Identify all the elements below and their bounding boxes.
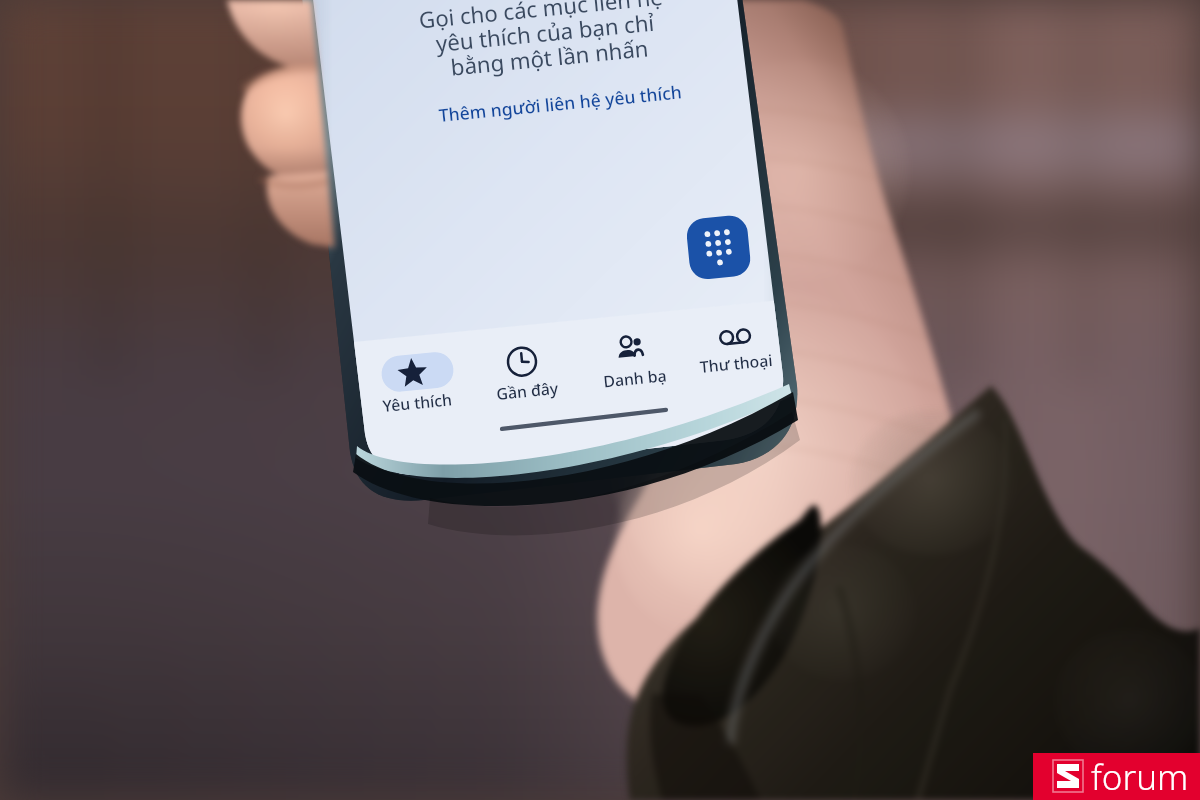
button[interactable]: Phone in hand showing dialer favourites … <box>0 0 1200 800</box>
